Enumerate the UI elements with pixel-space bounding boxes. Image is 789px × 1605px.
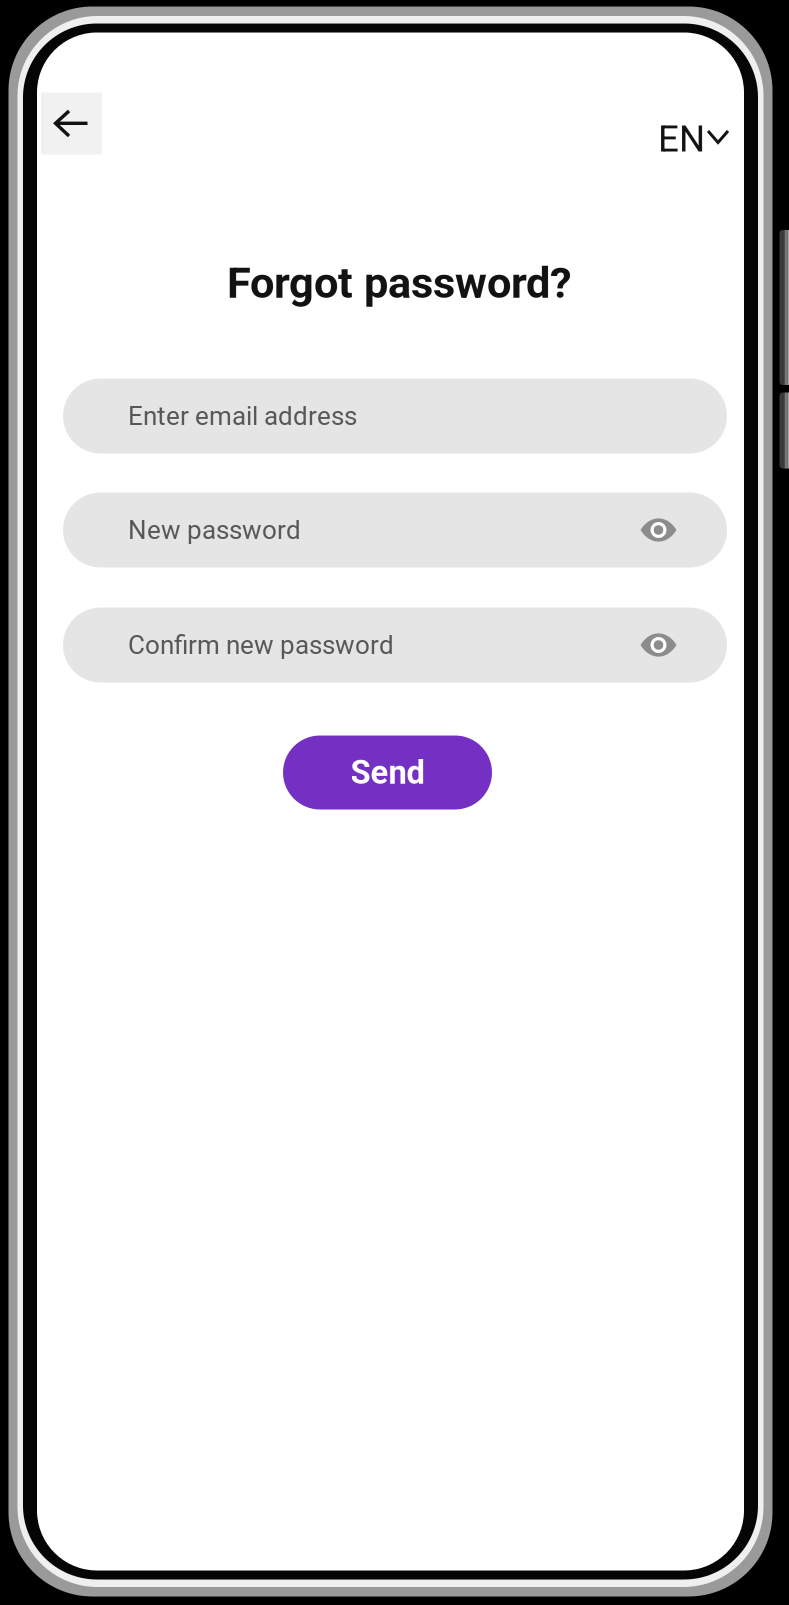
staticText: Send <box>350 753 424 792</box>
staticText: Enter email address <box>128 401 357 431</box>
button[interactable]: EN <box>658 117 730 160</box>
staticText: New password <box>128 515 301 545</box>
button[interactable]: Send <box>283 735 492 809</box>
button[interactable]: Enter email address <box>63 378 727 453</box>
staticText: Forgot password? <box>227 257 572 308</box>
staticText: EN <box>658 117 705 160</box>
button[interactable]: New password <box>63 492 727 567</box>
button[interactable]: Confirm new password <box>63 607 727 682</box>
staticText: Confirm new password <box>128 630 394 660</box>
button[interactable]: Back <box>41 92 102 154</box>
